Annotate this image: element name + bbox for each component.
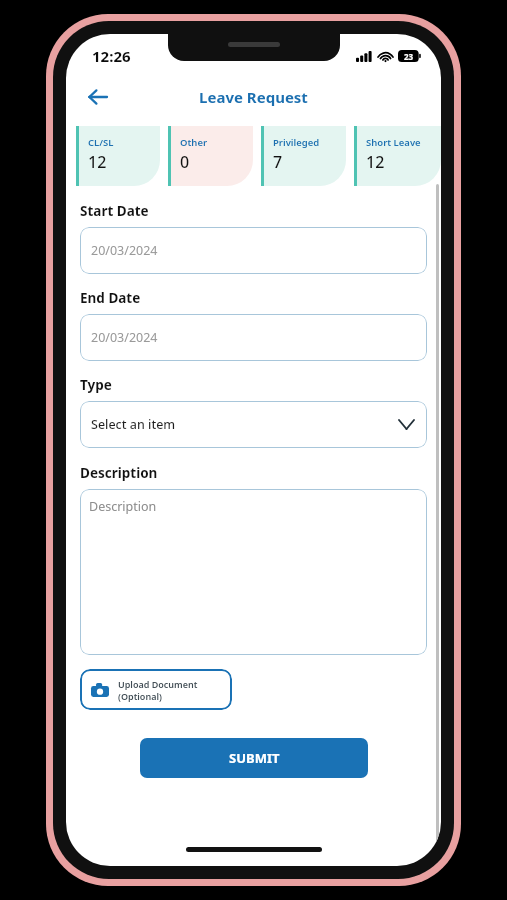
button[interactable]: CL/SL [76,126,160,188]
button[interactable]: Description [80,489,427,655]
staticText: 20/03/2024 [91,329,158,346]
staticText: End Date [80,289,141,307]
staticText: Type [80,376,112,394]
button[interactable]: SUBMIT [140,738,368,778]
staticText: 12 [366,151,385,173]
staticText: 7 [273,151,283,173]
button[interactable]: Privileged Leave [261,126,346,188]
staticText: CL/SL [88,136,114,149]
staticText: 12:26 [92,46,131,66]
staticText: Select an item [91,416,176,433]
staticText: Description [89,498,157,515]
staticText: 12 [88,151,107,173]
staticText: 23 [404,51,414,62]
staticText: Upload Document [118,678,198,690]
staticText: Description [80,464,158,482]
button[interactable]: 20/03/2024 [80,227,427,274]
button[interactable]: Other [168,126,253,188]
staticText: 0 [180,151,190,173]
staticText: Short Leave [366,136,421,149]
button[interactable]: Short Leave [354,126,441,188]
button[interactable]: 20/03/2024 [80,314,427,361]
staticText: (Optional) [118,690,162,702]
staticText: Start Date [80,202,149,220]
button[interactable]: Select an item [80,401,427,448]
staticText: SUBMIT [229,749,280,767]
staticText: Other [180,136,208,149]
staticText: Privileged Leave [273,136,346,149]
staticText: 20/03/2024 [91,242,158,259]
staticText: Leave Request [199,87,308,107]
button[interactable]: Back [78,77,118,117]
button[interactable]: Upload Document [80,669,232,710]
